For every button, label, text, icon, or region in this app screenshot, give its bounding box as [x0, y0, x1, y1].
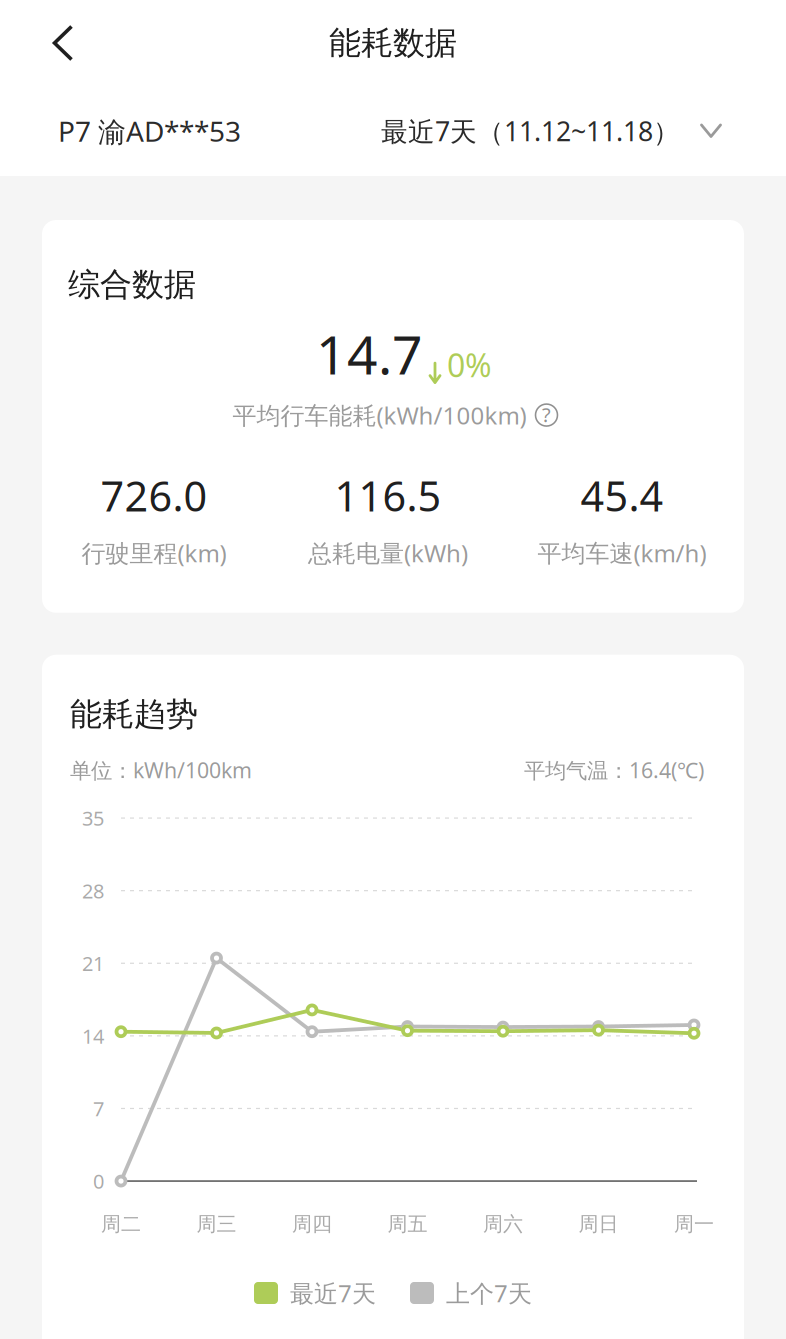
staticText: 116.5 [334, 468, 441, 523]
staticText: 周日 [578, 1212, 618, 1236]
staticText: 28 [82, 877, 104, 904]
staticText: 平均行车能耗(kWh/100km) [232, 399, 526, 431]
staticText: ? [542, 401, 551, 428]
staticText: 周三 [196, 1212, 236, 1236]
staticText: 14 [82, 1023, 104, 1049]
staticText: 21 [82, 950, 104, 977]
staticText: 周一 [674, 1212, 714, 1236]
staticText: 综合数据 [68, 265, 196, 304]
staticText: 最近7天 [290, 1277, 376, 1309]
staticText: 周六 [483, 1212, 523, 1236]
button[interactable]: 最近7天（11.12~11.18） [381, 113, 722, 149]
staticText: 上个7天 [446, 1277, 532, 1309]
staticText: 周五 [387, 1212, 427, 1236]
staticText: 0 [93, 1168, 104, 1194]
staticText: 45.4 [580, 468, 663, 523]
staticText: 能耗数据 [329, 23, 457, 63]
staticText: 7 [93, 1095, 104, 1122]
staticText: P7 渝AD***53 [58, 112, 241, 150]
button[interactable]: Back [32, 12, 94, 74]
staticText: 726.0 [100, 468, 207, 523]
staticText: 0% [447, 344, 492, 386]
staticText: 单位：kWh/100km [70, 756, 252, 784]
staticText: 周四 [292, 1212, 332, 1236]
staticText: 14.7 [316, 318, 423, 389]
staticText: 行驶里程(km) [81, 537, 226, 569]
staticText: 平均气温：16.4(℃) [524, 756, 704, 784]
staticText: 平均车速(km/h) [537, 537, 706, 569]
staticText: 最近7天（11.12~11.18） [381, 113, 680, 149]
staticText: 35 [82, 805, 104, 831]
staticText: 总耗电量(kWh) [308, 537, 468, 569]
staticText: 周二 [101, 1212, 141, 1236]
staticText: 能耗趋势 [70, 695, 198, 734]
